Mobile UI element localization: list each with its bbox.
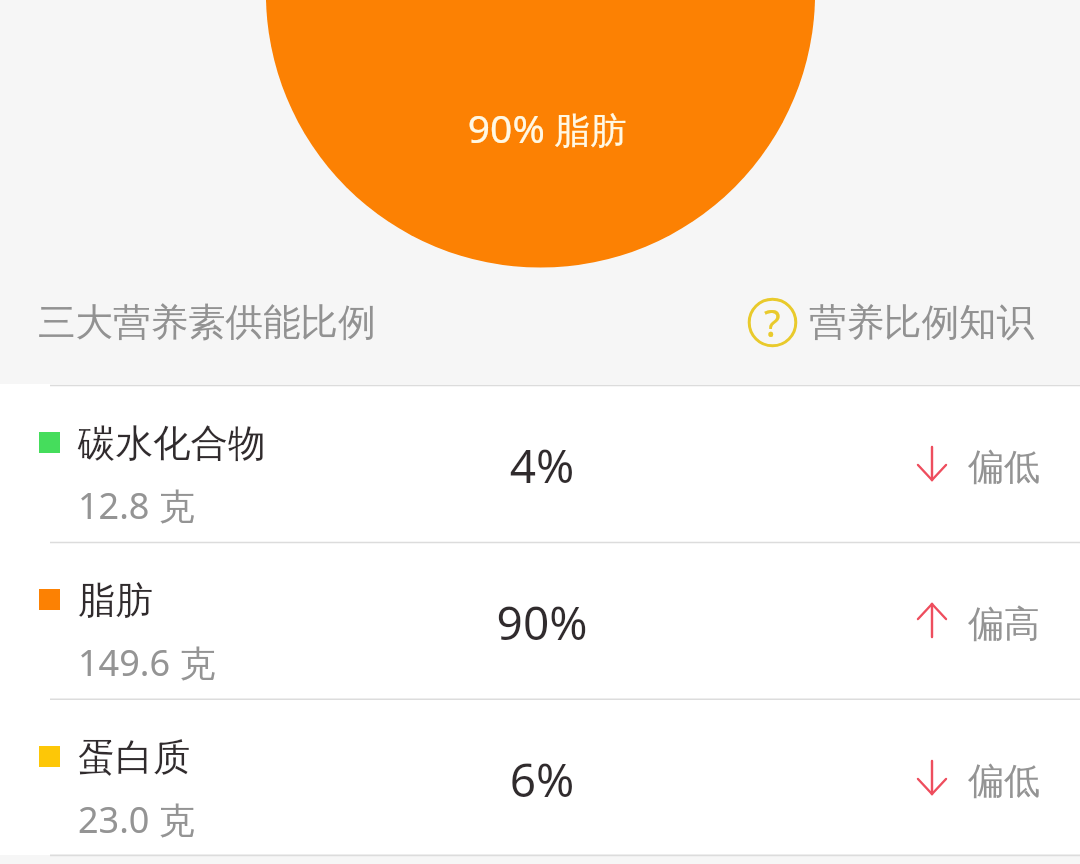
staticText: 偏低 [968, 444, 1040, 489]
other: 偏低 [913, 760, 951, 798]
staticText: 偏低 [968, 758, 1040, 803]
button[interactable]: 蛋白质 [0, 698, 1080, 855]
other: 偏高 [913, 603, 951, 641]
staticText: 碳水化合物 [78, 420, 266, 467]
button[interactable]: 脂肪 [0, 541, 1080, 698]
button[interactable]: 营养比例知识 [748, 298, 1080, 347]
staticText: 90% 脂肪 [7, 101, 1080, 154]
staticText: 营养比例知识 [809, 299, 1034, 346]
staticText: 偏高 [968, 601, 1040, 646]
button[interactable]: 碳水化合物 [0, 384, 1080, 541]
other: 偏低 [913, 446, 951, 484]
staticText: 6% [2, 748, 1080, 811]
staticText: 90% [2, 591, 1080, 654]
staticText: 23.0 克 [78, 795, 195, 844]
staticText: ? [764, 296, 781, 345]
staticText: 脂肪 [78, 577, 153, 624]
staticText: 4% [2, 434, 1080, 497]
staticText: 蛋白质 [78, 734, 191, 781]
other: 营养比例知识 [748, 298, 797, 347]
staticText: 149.6 克 [78, 638, 216, 687]
staticText: 12.8 克 [78, 481, 195, 530]
staticText: 三大营养素供能比例 [38, 299, 376, 346]
